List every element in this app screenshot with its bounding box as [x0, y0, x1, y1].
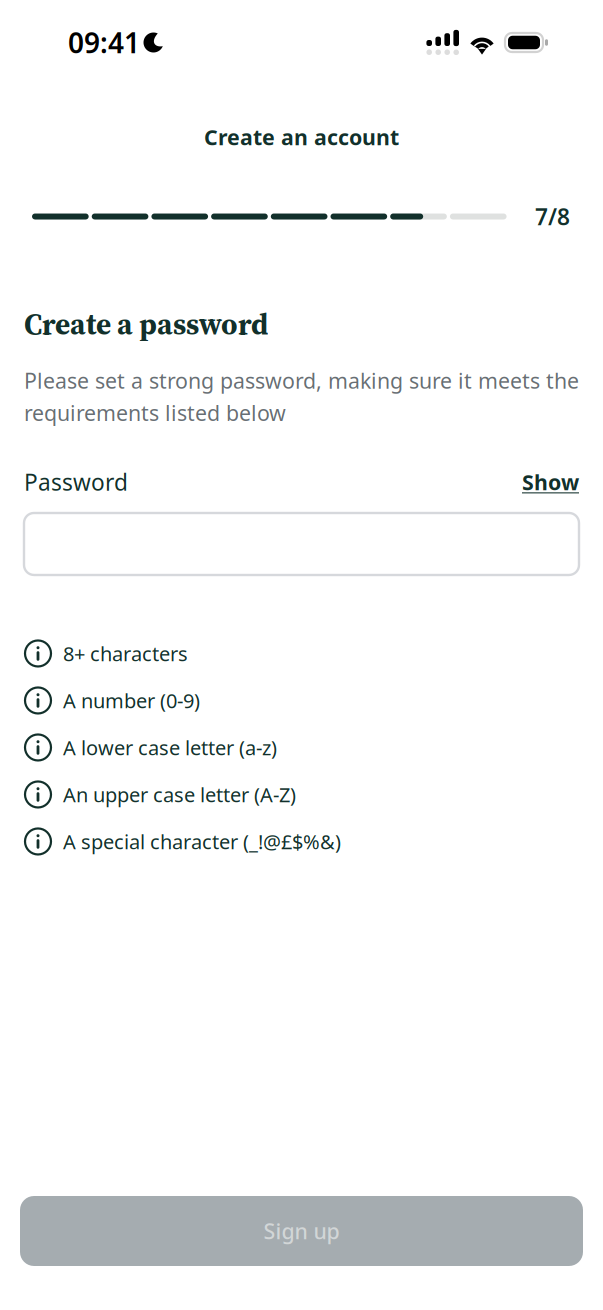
staticText: A special character (_!@£$%&)	[63, 828, 341, 855]
button[interactable]: Sign up	[20, 1196, 583, 1266]
button[interactable]: Password field	[24, 513, 579, 575]
staticText: An upper case letter (A-Z)	[63, 781, 296, 808]
staticText: 8+ characters	[63, 640, 188, 667]
staticText: A number (0-9)	[63, 687, 200, 714]
staticText: A lower case letter (a-z)	[63, 734, 277, 761]
button[interactable]: Show password	[522, 468, 579, 496]
staticText: 09:41	[68, 24, 140, 61]
staticText: Create a password	[24, 304, 268, 344]
staticText: Show	[522, 468, 579, 496]
staticText: Create an account	[204, 123, 399, 151]
staticText: Sign up	[263, 1217, 339, 1245]
staticText: 7/8	[535, 201, 570, 231]
staticText: Password	[24, 467, 128, 497]
staticText: Please set a strong password, making sur…	[24, 366, 579, 427]
